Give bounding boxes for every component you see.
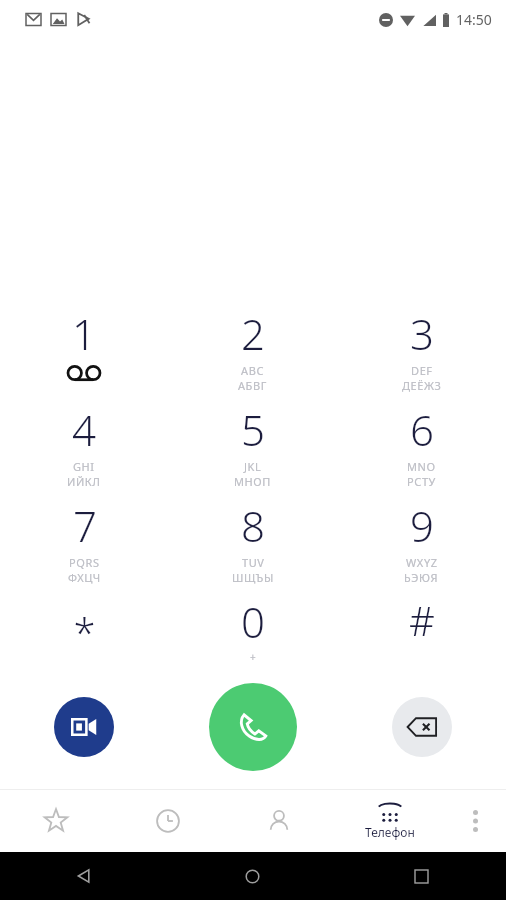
- staticText: 4: [72, 401, 96, 458]
- staticText: DEF: [411, 363, 433, 378]
- button[interactable]: *: [0, 591, 168, 671]
- staticText: TUV: [242, 555, 265, 570]
- staticText: JKL: [244, 459, 262, 474]
- staticText: ШЩЪЫ: [232, 570, 274, 585]
- staticText: *: [73, 605, 96, 659]
- staticText: 9: [410, 497, 434, 554]
- button[interactable]: 1: [0, 303, 168, 399]
- staticText: 14:50: [456, 10, 492, 29]
- staticText: АБВГ: [238, 378, 267, 393]
- button[interactable]: 0: [168, 591, 337, 671]
- staticText: ФХЦЧ: [68, 570, 101, 585]
- staticText: 6: [410, 401, 434, 458]
- staticText: GHI: [73, 459, 95, 474]
- staticText: РСТУ: [407, 474, 436, 489]
- button[interactable]: Video call: [54, 697, 114, 757]
- staticText: 3: [410, 305, 434, 362]
- button[interactable]: 9: [337, 495, 506, 591]
- staticText: 5: [241, 401, 265, 458]
- button[interactable]: Favorites: [0, 790, 112, 852]
- staticText: МНОП: [234, 474, 271, 489]
- staticText: PQRS: [69, 555, 100, 570]
- button[interactable]: #: [337, 591, 506, 671]
- button[interactable]: 6: [337, 399, 506, 495]
- button[interactable]: Backspace: [392, 697, 452, 757]
- staticText: 1: [72, 305, 96, 362]
- staticText: MNO: [407, 459, 436, 474]
- button[interactable]: Recents: [112, 790, 223, 852]
- staticText: #: [409, 593, 435, 647]
- staticText: ABC: [241, 363, 264, 378]
- staticText: Телефон: [365, 824, 415, 840]
- button[interactable]: 5: [168, 399, 337, 495]
- staticText: ДЕЁЖЗ: [402, 378, 442, 393]
- button[interactable]: Телефон: [334, 790, 445, 852]
- staticText: ИЙКЛ: [67, 474, 101, 489]
- button[interactable]: 8: [168, 495, 337, 591]
- staticText: 8: [241, 497, 265, 554]
- staticText: WXYZ: [406, 555, 438, 570]
- button[interactable]: 7: [0, 495, 168, 591]
- staticText: ЬЭЮЯ: [404, 570, 439, 585]
- button[interactable]: 2: [168, 303, 337, 399]
- staticText: 7: [73, 497, 97, 554]
- button[interactable]: 3: [337, 303, 506, 399]
- staticText: 0: [241, 593, 265, 650]
- button[interactable]: Call: [209, 683, 297, 771]
- button[interactable]: Contacts: [223, 790, 334, 852]
- button[interactable]: 4: [0, 399, 168, 495]
- staticText: +: [250, 650, 256, 664]
- staticText: 2: [241, 305, 265, 362]
- button[interactable]: More options: [445, 790, 506, 852]
